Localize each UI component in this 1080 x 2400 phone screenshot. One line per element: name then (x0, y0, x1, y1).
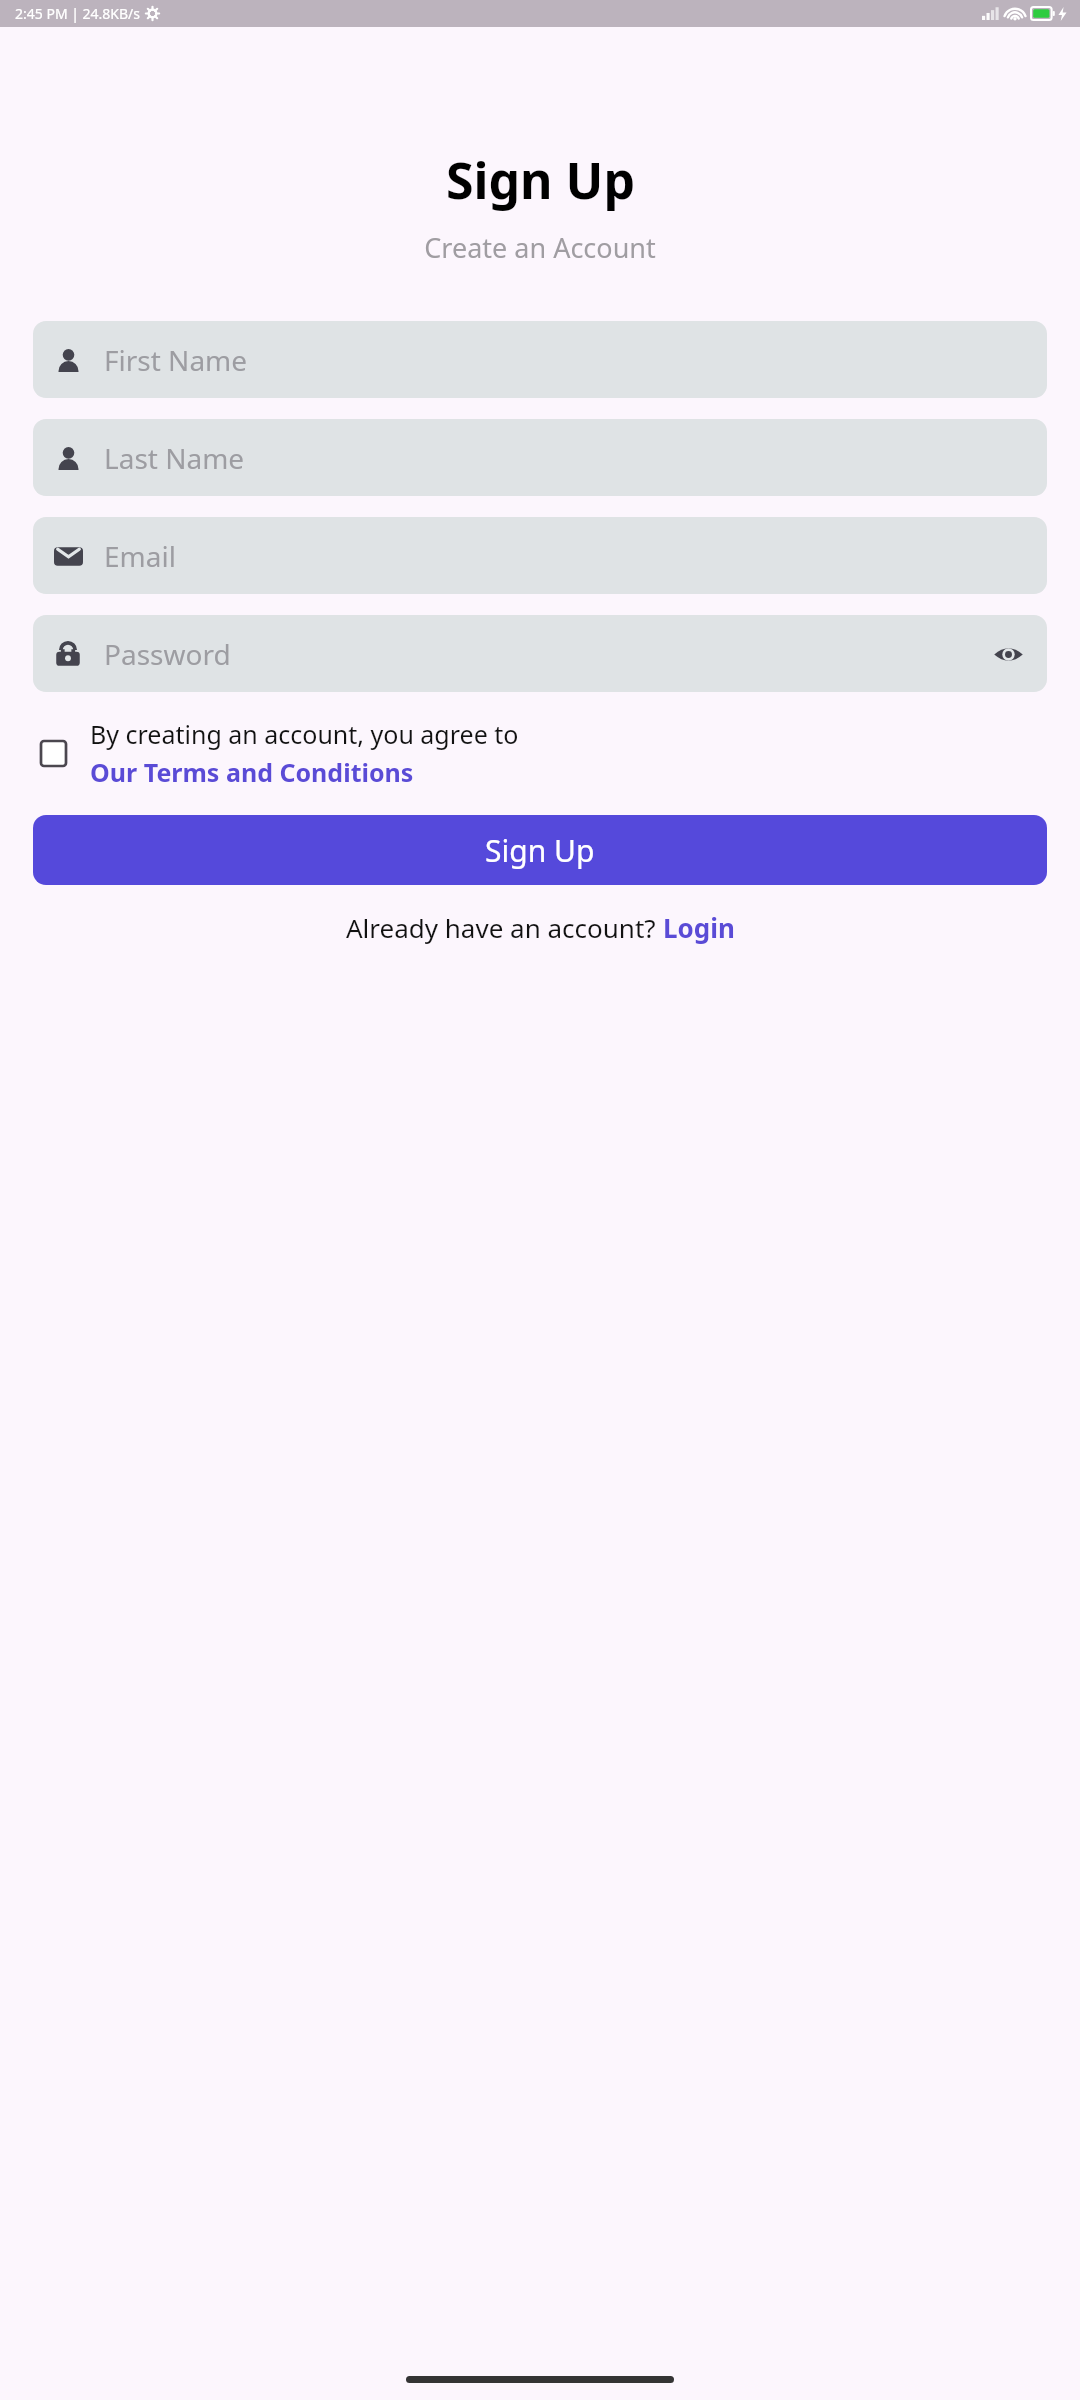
staticText: Our Terms and Conditions (90, 755, 414, 789)
button[interactable]: Sign Up (33, 815, 1047, 885)
staticText: By creating an account, you agree to (90, 717, 519, 751)
staticText: Already have an account? (346, 910, 663, 945)
button[interactable]: Agree to terms checkbox (34, 734, 72, 772)
staticText: Sign Up (446, 146, 635, 214)
staticText: Last Name (104, 439, 245, 477)
button[interactable]: Last name (33, 419, 1047, 496)
staticText: Sign Up (485, 830, 595, 871)
staticText: Login (663, 910, 735, 945)
staticText: Create an Account (424, 229, 656, 266)
staticText: Password (104, 635, 231, 673)
button[interactable]: Show password (991, 637, 1025, 671)
staticText: First Name (104, 341, 248, 379)
button[interactable]: First name (33, 321, 1047, 398)
button[interactable]: Email (33, 517, 1047, 594)
staticText: Email (104, 537, 176, 575)
button[interactable]: Login (663, 910, 735, 945)
button[interactable]: Our Terms and Conditions (90, 755, 414, 789)
staticText: 2:45 PM | 24.8KB/s (15, 4, 141, 23)
button[interactable]: Password (33, 615, 1047, 692)
